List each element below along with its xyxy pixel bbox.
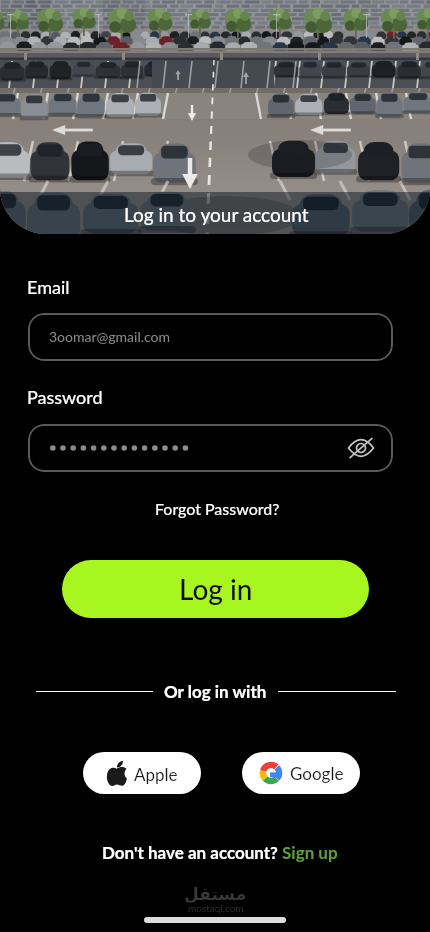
button[interactable]: 3oomar@gmail.com — [28, 313, 393, 361]
staticText: Apple — [134, 764, 178, 784]
staticText: مستقل — [184, 884, 247, 904]
staticText: Log in to your account — [124, 203, 309, 226]
staticText: mostaql.com — [188, 902, 244, 914]
button[interactable]: Show password — [28, 424, 393, 472]
staticText: Or log in with — [164, 681, 267, 701]
button[interactable]: Log in — [62, 560, 369, 618]
staticText: 3oomar@gmail.com — [49, 328, 171, 345]
staticText: Google — [290, 763, 344, 783]
button[interactable]: Google — [242, 752, 360, 794]
staticText: Log in — [179, 572, 253, 606]
button[interactable]: Don't have an account? Sign up — [102, 842, 338, 862]
staticText: Password — [27, 386, 103, 408]
button[interactable]: Apple — [83, 752, 201, 794]
button[interactable]: Show password — [347, 436, 375, 460]
button[interactable]: Forgot Password? — [155, 499, 280, 518]
staticText: Email — [27, 276, 70, 298]
